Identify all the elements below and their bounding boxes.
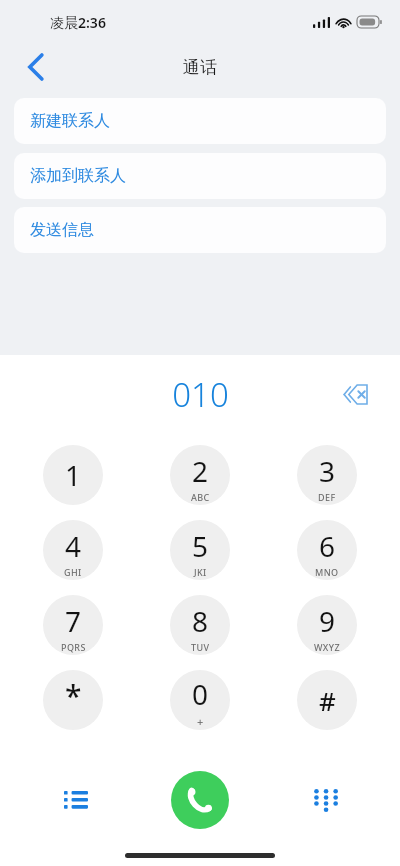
staticText: 3 xyxy=(319,452,336,490)
staticText: ABC xyxy=(191,491,210,503)
staticText: 6 xyxy=(319,527,336,565)
button[interactable]: Call xyxy=(171,771,229,829)
staticText: JKI xyxy=(194,566,207,578)
staticText: 4 xyxy=(65,527,82,565)
staticText: GHI xyxy=(64,566,82,578)
staticText: TUV xyxy=(191,641,210,653)
button[interactable]: Back xyxy=(14,45,58,89)
button[interactable]: 9 xyxy=(297,595,357,655)
staticText: WXYZ xyxy=(314,641,340,653)
staticText: 5 xyxy=(192,527,209,565)
button[interactable]: 5 xyxy=(170,520,230,580)
staticText: 通话 xyxy=(183,57,217,78)
button[interactable]: 4 xyxy=(43,520,103,580)
staticText: 凌晨2:36 xyxy=(50,13,106,32)
button[interactable]: 3 xyxy=(297,445,357,505)
staticText: 新建联系人 xyxy=(30,111,110,131)
button[interactable]: Call log xyxy=(54,778,98,822)
staticText: 1 xyxy=(65,456,82,494)
button[interactable]: * xyxy=(43,670,103,730)
staticText: * xyxy=(65,675,82,716)
button[interactable]: 8 xyxy=(170,595,230,655)
button[interactable]: 添加到联系人 xyxy=(14,153,386,199)
button[interactable]: 2 xyxy=(170,445,230,505)
staticText: 7 xyxy=(65,602,82,640)
staticText: 0 xyxy=(192,675,209,713)
staticText: 9 xyxy=(319,602,336,640)
button[interactable]: 新建联系人 xyxy=(14,98,386,144)
button[interactable]: 6 xyxy=(297,520,357,580)
staticText: 8 xyxy=(192,602,209,640)
button[interactable]: # xyxy=(297,670,357,730)
staticText: MNO xyxy=(315,566,339,578)
staticText: + xyxy=(197,714,204,729)
staticText: PQRS xyxy=(61,641,86,653)
staticText: # xyxy=(319,683,336,718)
button[interactable]: 0 xyxy=(170,670,230,730)
staticText: 2 xyxy=(192,452,209,490)
staticText: 发送信息 xyxy=(30,220,94,240)
staticText: DEF xyxy=(318,491,336,503)
button[interactable]: Delete xyxy=(332,372,376,416)
button[interactable]: 7 xyxy=(43,595,103,655)
staticText: 添加到联系人 xyxy=(30,166,126,186)
staticText: 010 xyxy=(172,372,229,417)
button[interactable]: Keypad xyxy=(304,778,348,822)
button[interactable]: 1 xyxy=(43,445,103,505)
button[interactable]: 发送信息 xyxy=(14,207,386,253)
